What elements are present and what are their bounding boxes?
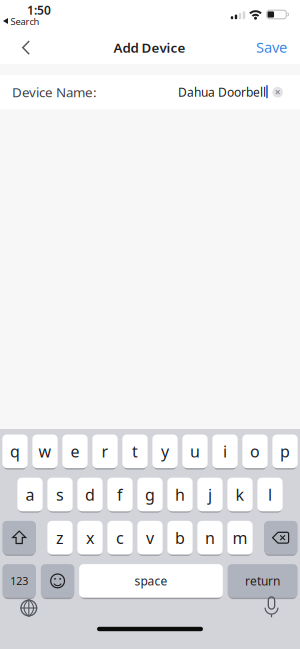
button[interactable]: 123 <box>2 564 36 598</box>
staticText: 1:50 <box>27 2 51 18</box>
button[interactable] <box>264 521 298 554</box>
button[interactable]: Search <box>2 15 39 28</box>
staticText: 123 <box>10 574 28 588</box>
staticText: t <box>132 441 138 462</box>
button[interactable]: space <box>79 564 223 598</box>
staticText: r <box>101 441 108 462</box>
staticText: e <box>70 441 79 462</box>
staticText: f <box>117 484 123 505</box>
staticText: Search <box>10 15 39 28</box>
staticText: return <box>245 573 280 589</box>
staticText: Device Name: <box>12 83 97 101</box>
button[interactable]: r <box>92 434 118 468</box>
button[interactable]: x <box>77 521 103 554</box>
staticText: b <box>175 527 185 548</box>
staticText: Save <box>256 37 287 57</box>
staticText: k <box>235 484 244 505</box>
staticText: c <box>116 527 124 548</box>
staticText: i <box>223 441 227 462</box>
button[interactable]: c <box>107 521 133 554</box>
staticText: z <box>56 527 64 548</box>
button[interactable] <box>259 594 283 620</box>
button[interactable]: b <box>167 521 193 554</box>
button[interactable]: u <box>182 434 208 468</box>
button[interactable]: j <box>197 478 223 511</box>
staticText: Add Device <box>113 39 185 56</box>
button[interactable]: i <box>212 434 238 468</box>
button[interactable]: l <box>257 478 283 511</box>
button[interactable]: f <box>107 478 133 511</box>
staticText: w <box>38 441 51 462</box>
button[interactable]: Dahua Doorbell <box>178 84 268 100</box>
button[interactable]: y <box>152 434 178 468</box>
staticText: n <box>205 527 215 548</box>
button[interactable]: t <box>122 434 148 468</box>
staticText: j <box>208 484 212 505</box>
button[interactable]: e <box>62 434 88 468</box>
staticText: space <box>134 573 167 589</box>
button[interactable]: o <box>242 434 268 468</box>
button[interactable]: z <box>47 521 73 554</box>
button[interactable]: a <box>17 478 43 511</box>
button[interactable]: w <box>32 434 58 468</box>
staticText: a <box>25 484 34 505</box>
button[interactable] <box>22 41 30 55</box>
staticText: s <box>56 484 64 505</box>
button[interactable]: Save <box>256 37 287 57</box>
button[interactable] <box>17 596 41 620</box>
staticText: q <box>10 441 20 462</box>
staticText: l <box>268 484 272 505</box>
staticText: Dahua Doorbell <box>178 84 266 100</box>
staticText: o <box>250 441 260 462</box>
button[interactable]: q <box>2 434 28 468</box>
button[interactable]: k <box>227 478 253 511</box>
button[interactable]: g <box>137 478 163 511</box>
staticText: v <box>146 527 154 548</box>
staticText: h <box>175 484 185 505</box>
staticText: m <box>232 527 247 548</box>
button[interactable]: h <box>167 478 193 511</box>
staticText: x <box>86 527 94 548</box>
button[interactable]: p <box>272 434 298 468</box>
staticText: u <box>190 441 200 462</box>
button[interactable] <box>272 87 283 97</box>
button[interactable]: v <box>137 521 163 554</box>
button[interactable] <box>2 521 36 554</box>
button[interactable]: d <box>77 478 103 511</box>
button[interactable]: n <box>197 521 223 554</box>
button[interactable]: s <box>47 478 73 511</box>
staticText: y <box>161 441 169 462</box>
button[interactable]: return <box>228 564 298 598</box>
staticText: d <box>85 484 95 505</box>
button[interactable]: m <box>227 521 253 554</box>
staticText: p <box>280 441 290 462</box>
button[interactable] <box>41 564 74 598</box>
staticText: g <box>145 484 155 505</box>
